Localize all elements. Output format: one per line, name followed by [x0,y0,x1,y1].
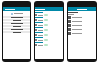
button[interactable] [68,7,96,11]
button[interactable] [3,16,30,18]
button[interactable] [35,7,63,11]
button[interactable] [68,32,96,35]
button[interactable] [3,22,30,24]
button[interactable] [3,12,30,15]
button[interactable] [68,20,96,23]
button[interactable] [35,32,63,36]
button[interactable] [3,19,30,21]
button[interactable] [68,24,96,27]
button[interactable] [35,37,63,41]
button[interactable] [35,17,63,21]
button[interactable] [35,12,63,16]
button[interactable] [35,42,63,46]
button[interactable] [35,27,63,31]
button[interactable] [3,25,30,27]
button[interactable] [35,22,63,26]
button[interactable] [3,7,30,11]
button[interactable] [68,16,96,19]
button[interactable] [3,31,30,33]
button[interactable] [68,28,96,31]
button[interactable] [3,28,30,30]
